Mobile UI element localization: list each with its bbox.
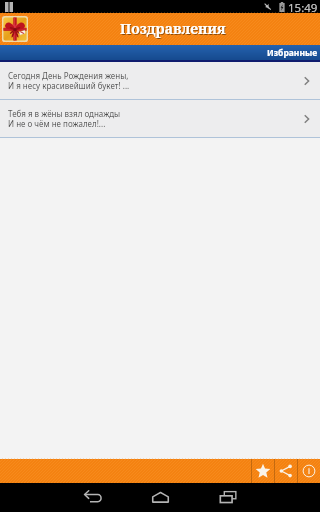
staticText: Поздравления bbox=[120, 19, 226, 38]
staticText: 15:49 bbox=[288, 0, 318, 13]
button[interactable]: Favorite bbox=[251, 459, 274, 483]
button[interactable]: Recent apps bbox=[211, 483, 245, 512]
staticText: Поздравления bbox=[121, 20, 227, 39]
staticText: И я несу красивейший букет! ... bbox=[8, 80, 130, 91]
button[interactable]: Тебя я в жёны взял однажды bbox=[0, 100, 320, 137]
button[interactable]: Back bbox=[75, 483, 109, 512]
button[interactable]: Home bbox=[143, 483, 177, 512]
button[interactable]: Сегодня День Рождения жены, bbox=[0, 62, 320, 99]
staticText: Тебя я в жёны взял однажды bbox=[8, 108, 121, 119]
button[interactable]: Избранные bbox=[0, 45, 320, 60]
staticText: Избранные bbox=[267, 47, 318, 59]
button[interactable]: Share bbox=[274, 459, 297, 483]
staticText: Сегодня День Рождения жены, bbox=[8, 70, 129, 81]
button[interactable]: App icon bbox=[0, 13, 30, 45]
staticText: И не о чём не пожалел!... bbox=[8, 118, 106, 129]
button[interactable]: Info bbox=[297, 459, 320, 483]
